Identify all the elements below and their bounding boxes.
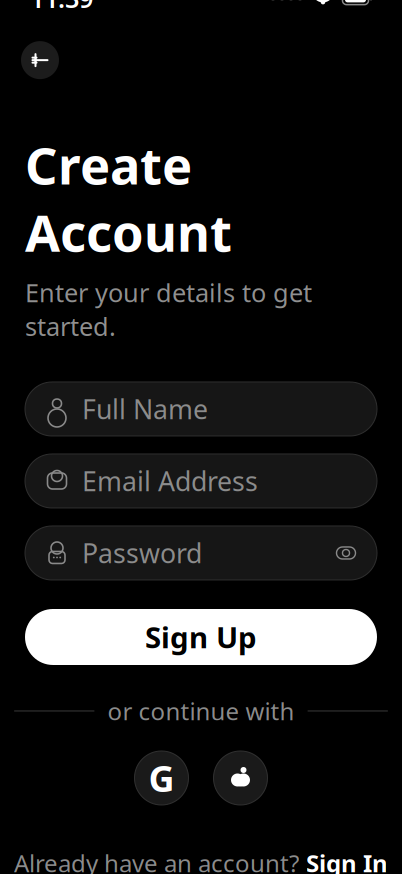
button[interactable]: Back bbox=[21, 41, 59, 79]
staticText: Email Address bbox=[82, 463, 258, 499]
staticText: or continue with bbox=[107, 695, 294, 727]
staticText: Already have an account? bbox=[14, 847, 299, 874]
button[interactable]: Password bbox=[25, 526, 377, 580]
staticText: Sign Up bbox=[145, 617, 257, 656]
staticText: Sign In bbox=[306, 847, 388, 874]
button[interactable]: Sign Up bbox=[25, 609, 377, 665]
button[interactable]: Already have an account? bbox=[2, 839, 400, 874]
staticText: 11:39 bbox=[30, 0, 93, 15]
staticText: Enter your details to get started. bbox=[25, 276, 312, 343]
staticText: G bbox=[148, 754, 174, 802]
staticText: Password bbox=[82, 535, 202, 571]
staticText: Create Account bbox=[25, 131, 232, 266]
button[interactable]: Continue with Google bbox=[134, 751, 188, 805]
button[interactable]: Email Address bbox=[25, 454, 377, 508]
staticText: Full Name bbox=[82, 391, 208, 427]
button[interactable]: Continue with Apple bbox=[213, 751, 267, 805]
button[interactable]: Full Name bbox=[25, 382, 377, 436]
